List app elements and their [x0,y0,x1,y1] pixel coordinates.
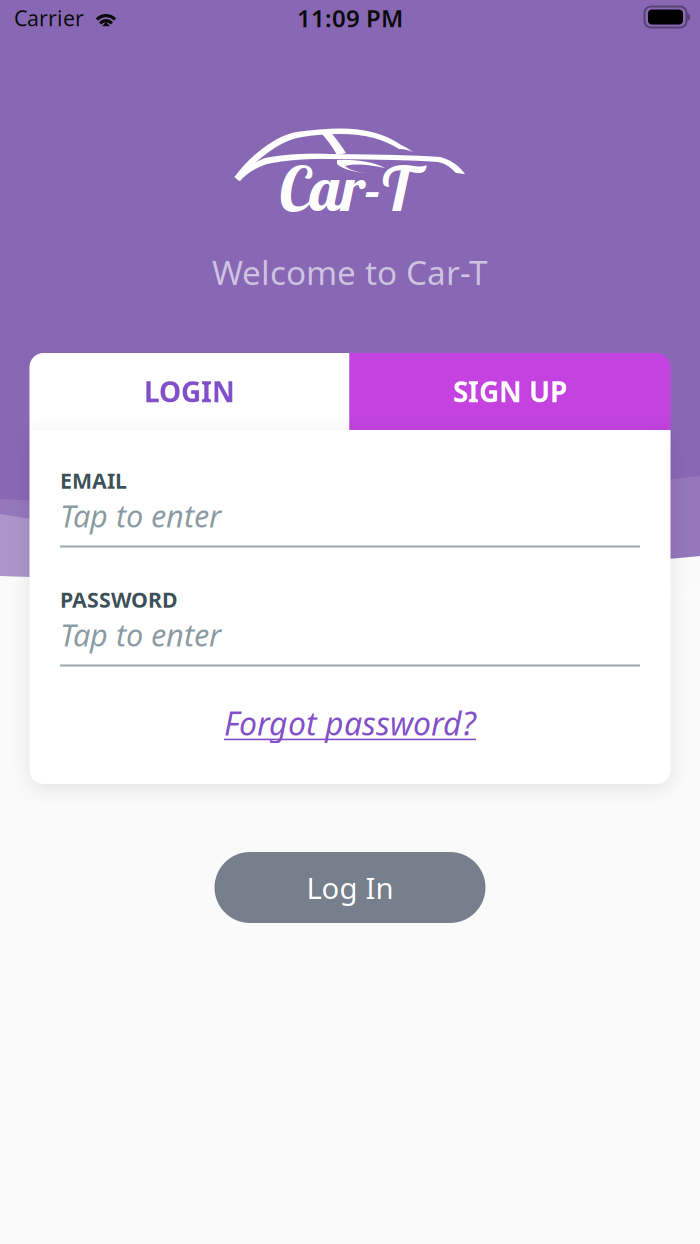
staticText: LOGIN [144,373,235,410]
staticText: SIGN UP [453,373,567,410]
staticText: Welcome to Car-T [212,250,488,294]
staticText: Car-T [278,150,420,226]
button[interactable]: Forgot password? [224,702,476,744]
staticText: EMAIL [60,466,127,495]
staticText: Log In [306,868,393,907]
button[interactable]: PASSWORD [60,589,640,666]
staticText: 11:09 PM [297,2,403,34]
button[interactable]: SIGN UP [349,353,670,430]
button[interactable]: EMAIL [60,470,640,547]
staticText: Tap to enter [60,495,221,536]
button[interactable]: Log In [214,852,485,923]
staticText: PASSWORD [60,585,178,614]
staticText: Carrier [14,4,84,32]
staticText: Forgot password? [224,702,476,744]
button[interactable]: LOGIN [29,353,349,430]
staticText: Tap to enter [60,614,221,655]
